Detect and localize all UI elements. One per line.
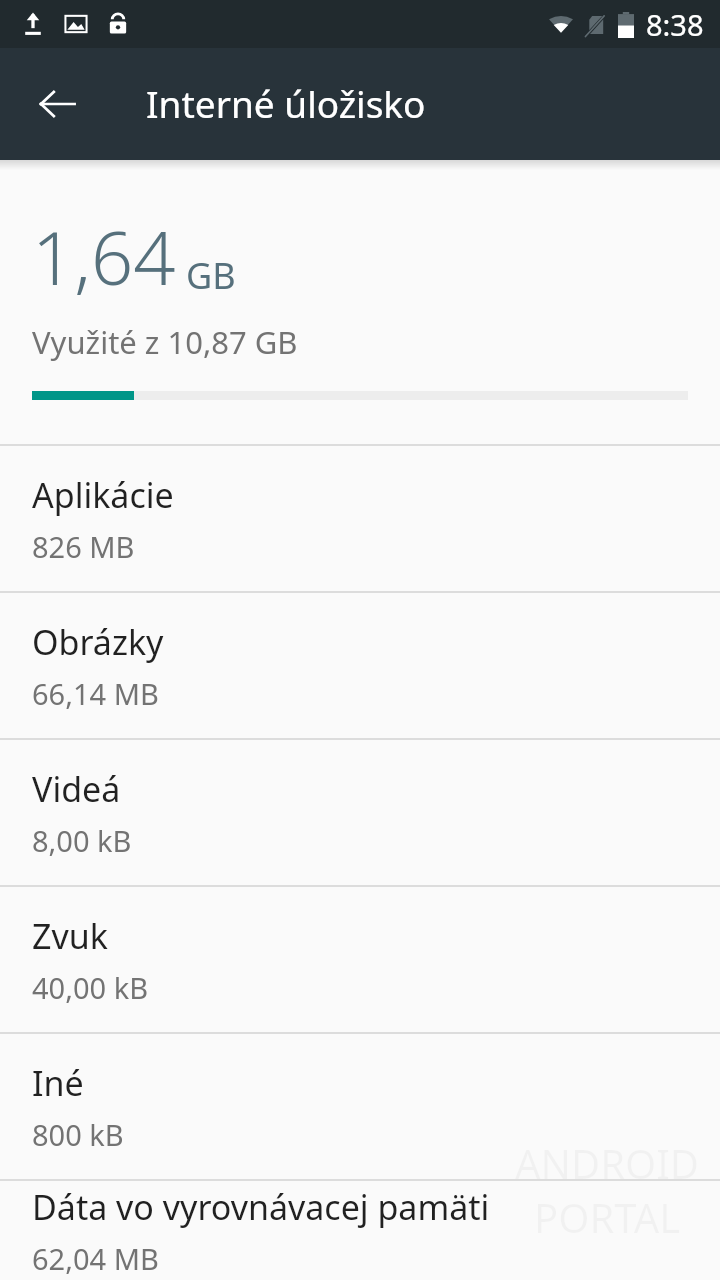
button[interactable]: Obrázky <box>0 593 720 738</box>
staticText: 1,64 <box>32 206 176 307</box>
staticText: Využité z 10,87 GB <box>32 321 298 363</box>
staticText: Videá <box>32 766 121 812</box>
staticText: 66,14 MB <box>32 674 159 713</box>
button[interactable]: Späť <box>22 69 92 139</box>
staticText: GB <box>186 251 236 300</box>
staticText: ANDROID <box>515 1136 700 1190</box>
button[interactable]: Iné <box>0 1034 720 1179</box>
staticText: Interné úložisko <box>146 78 426 128</box>
staticText: PORTAL <box>534 1190 681 1244</box>
staticText: Aplikácie <box>32 472 174 518</box>
button[interactable]: Dáta vo vyrovnávacej pamäti <box>0 1181 720 1280</box>
staticText: 826 MB <box>32 527 135 566</box>
button[interactable]: Aplikácie <box>0 446 720 591</box>
staticText: 40,00 kB <box>32 968 149 1007</box>
staticText: Dáta vo vyrovnávacej pamäti <box>32 1184 490 1230</box>
staticText: Zvuk <box>32 913 108 959</box>
staticText: 8:38 <box>646 5 704 44</box>
staticText: Obrázky <box>32 619 164 665</box>
button[interactable]: Videá <box>0 740 720 885</box>
staticText: 62,04 MB <box>32 1239 159 1278</box>
button[interactable]: Zvuk <box>0 887 720 1032</box>
staticText: 8,00 kB <box>32 821 132 860</box>
staticText: 800 kB <box>32 1115 124 1154</box>
staticText: Iné <box>32 1060 84 1106</box>
